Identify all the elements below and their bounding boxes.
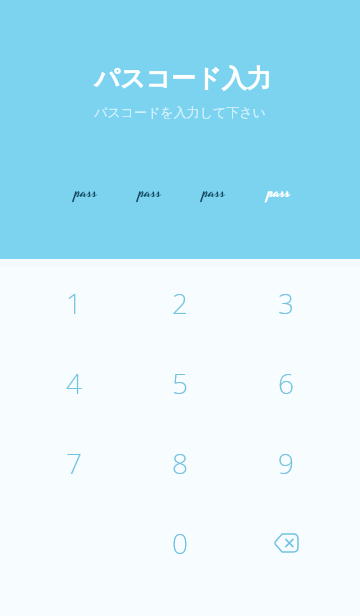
staticText: パスコード入力 [94, 63, 272, 94]
button[interactable]: 4 [21, 343, 127, 423]
staticText: パスコードを入力して下さい [94, 104, 266, 120]
staticText: 1 [66, 284, 82, 322]
button[interactable]: 5 [127, 343, 233, 423]
staticText: pass [203, 181, 226, 204]
staticText: 8 [172, 444, 188, 482]
staticText: 3 [278, 284, 294, 322]
button[interactable]: 1 [21, 263, 127, 343]
button[interactable]: 8 [127, 423, 233, 503]
staticText: pass [268, 181, 291, 204]
button[interactable]: 7 [21, 423, 127, 503]
staticText: pass [75, 181, 98, 204]
staticText: 4 [66, 364, 82, 402]
button[interactable]: 6 [233, 343, 339, 423]
staticText: 7 [66, 444, 82, 482]
button[interactable]: Delete [233, 503, 339, 583]
button[interactable]: 0 [127, 503, 233, 583]
staticText: 6 [278, 364, 294, 402]
staticText: 2 [172, 284, 188, 322]
button[interactable]: 2 [127, 263, 233, 343]
staticText: 5 [172, 364, 188, 402]
staticText: pass [139, 181, 162, 204]
staticText: 0 [172, 524, 188, 562]
other: Delete [274, 534, 298, 552]
button[interactable]: 9 [233, 423, 339, 503]
staticText: 9 [278, 444, 294, 482]
button[interactable]: 3 [233, 263, 339, 343]
